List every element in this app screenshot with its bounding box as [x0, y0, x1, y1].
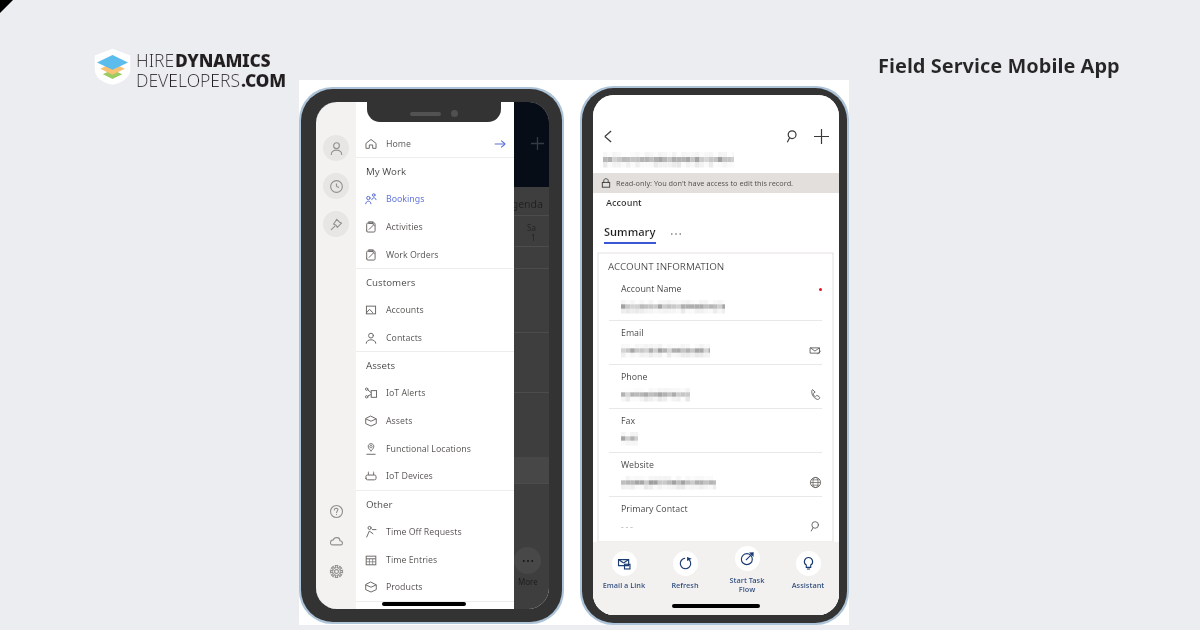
button[interactable]: mail [807, 342, 824, 358]
staticText: Phone [621, 371, 648, 383]
staticText: Summary [604, 224, 656, 239]
button[interactable]: Home [356, 130, 514, 158]
staticText: Field Service Mobile App [878, 52, 1120, 79]
button[interactable]: Products [356, 573, 514, 601]
staticText: Time Off Requests [386, 526, 462, 538]
staticText: DEVELOPERS [136, 68, 241, 92]
staticText: Contacts [386, 332, 423, 344]
staticText: Agenda [505, 197, 543, 211]
button[interactable]: Accounts [356, 296, 514, 324]
staticText: Read-only: You don't have access to edit… [616, 178, 794, 188]
staticText: Accounts [386, 304, 424, 316]
staticText: ACCOUNT INFORMATION [608, 260, 725, 273]
button[interactable]: Refresh [655, 551, 715, 590]
staticText: Fax [621, 415, 636, 427]
staticText: My Work [366, 165, 407, 178]
button[interactable]: Work Orders [356, 241, 514, 269]
staticText: Sa [527, 222, 536, 233]
button[interactable]: Start Task Flow [717, 546, 777, 594]
staticText: Other [366, 498, 393, 511]
button[interactable]: More tabs [667, 225, 685, 243]
button[interactable]: Summary [604, 224, 656, 244]
button[interactable]: Assistant [778, 551, 838, 590]
staticText: Customers [366, 276, 416, 289]
staticText: .COM [241, 68, 286, 92]
staticText: Assets [366, 359, 396, 372]
staticText: Functional Locations [386, 443, 471, 455]
button[interactable]: Email a Link [594, 551, 654, 590]
staticText: Products [386, 581, 423, 593]
staticText: Account [606, 196, 642, 208]
staticText: More [518, 576, 538, 587]
staticText: Refresh [655, 580, 715, 590]
staticText: DYNAMICS [175, 48, 271, 72]
button[interactable]: gear [323, 558, 349, 584]
button[interactable]: globe [807, 474, 824, 490]
button[interactable]: phone [807, 386, 824, 402]
staticText: 1 [531, 232, 536, 243]
staticText: - - - [621, 521, 633, 532]
staticText: IoT Devices [386, 470, 433, 482]
staticText: Website [621, 459, 654, 471]
staticText: IoT Alerts [386, 387, 426, 399]
button[interactable]: Functional Locations [356, 435, 514, 463]
button[interactable]: IoT Alerts [356, 379, 514, 407]
button[interactable]: Back [597, 125, 620, 148]
button[interactable]: search [807, 518, 824, 534]
button[interactable]: IoT Devices [356, 462, 514, 490]
staticText: Bookings [386, 193, 425, 205]
staticText: Assets [386, 415, 413, 427]
staticText: Primary Contact [621, 503, 688, 515]
staticText: Start Task Flow [717, 575, 777, 594]
staticText: Account Name [621, 283, 682, 295]
staticText: HIRE [136, 48, 175, 72]
staticText: Work Orders [386, 249, 439, 261]
staticText: Email a Link [594, 580, 654, 590]
button[interactable]: Contacts [356, 324, 514, 352]
button[interactable]: Time Off Requests [356, 518, 514, 546]
button[interactable]: Assets [356, 407, 514, 435]
staticText: Assistant [778, 580, 838, 590]
staticText: Email [621, 327, 644, 339]
button[interactable]: Activities [356, 213, 514, 241]
button[interactable]: New record [810, 125, 833, 148]
button[interactable]: Search [781, 125, 804, 148]
button[interactable]: cloud [323, 528, 349, 554]
button[interactable]: Time Entries [356, 546, 514, 574]
button[interactable]: clock [323, 173, 349, 199]
button[interactable]: Bookings [356, 185, 514, 213]
button[interactable]: person [323, 135, 349, 161]
button[interactable]: help [323, 498, 349, 524]
staticText: Activities [386, 221, 423, 233]
button[interactable]: pin [323, 211, 349, 237]
staticText: Time Entries [386, 554, 438, 566]
staticText: Home [386, 138, 412, 150]
